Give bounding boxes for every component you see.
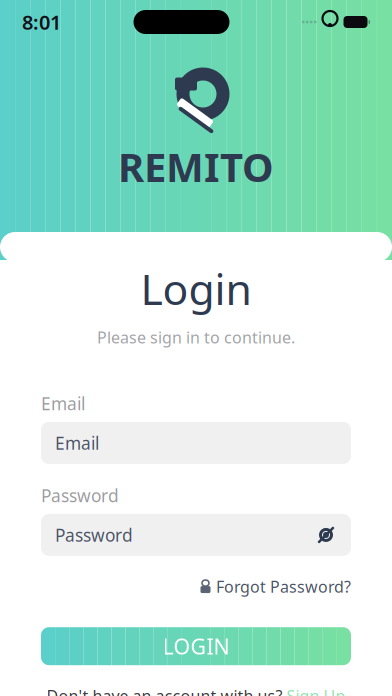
staticText: Email [55,431,99,454]
button[interactable]: LOGIN [41,627,351,665]
staticText: Password [55,523,133,546]
button[interactable]: Password [41,514,351,556]
staticText: 8:01 [22,9,61,35]
staticText: Sign Up [286,685,345,696]
button[interactable]: Forgot Password? [200,572,351,601]
staticText: Email [41,392,85,415]
staticText: LOGIN [162,632,229,660]
button[interactable]: Don't have an account with us? [41,685,351,696]
staticText: Login [140,260,251,317]
staticText: REMITO [118,140,274,193]
button[interactable]: Email [41,422,351,464]
staticText: Forgot Password? [216,576,351,597]
staticText: Don't have an account with us? [46,685,282,696]
staticText: Password [41,484,119,507]
staticText: Please sign in to continue. [97,327,295,348]
